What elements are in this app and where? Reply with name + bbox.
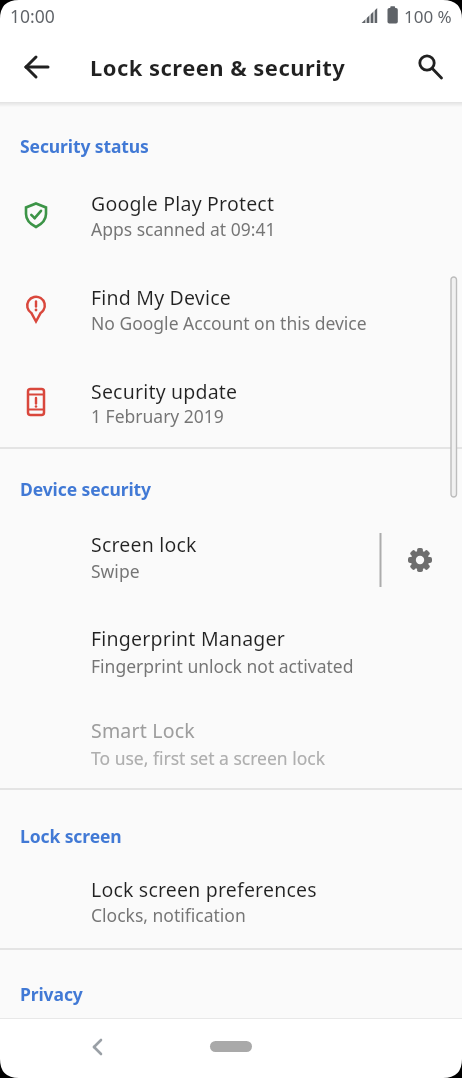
- staticText: Privacy: [20, 982, 83, 1006]
- staticText: Swipe: [91, 559, 140, 583]
- button[interactable]: [396, 536, 444, 584]
- staticText: To use, first set a screen lock: [91, 746, 326, 770]
- button[interactable]: [14, 44, 60, 90]
- staticText: Device security: [20, 477, 151, 501]
- button[interactable]: Find My Device: [0, 262, 462, 356]
- staticText: Smart Lock: [91, 717, 195, 744]
- button[interactable]: Smart Lock: [0, 695, 462, 789]
- staticText: No Google Account on this device: [91, 311, 367, 335]
- button[interactable]: Fingerprint Manager: [0, 603, 462, 697]
- button[interactable]: Lock screen preferences: [0, 854, 462, 948]
- staticText: Apps scanned at 09:41: [91, 217, 276, 241]
- button[interactable]: [406, 44, 452, 90]
- staticText: Google Play Protect: [91, 190, 275, 217]
- staticText: Find My Device: [91, 284, 231, 311]
- button[interactable]: Screen lock: [0, 508, 462, 602]
- staticText: Fingerprint Manager: [91, 625, 285, 652]
- button[interactable]: Security update: [0, 356, 462, 450]
- staticText: Lock screen & security: [90, 52, 346, 82]
- staticText: Security status: [20, 134, 149, 158]
- staticText: 100 %: [404, 5, 452, 28]
- staticText: Lock screen: [20, 824, 122, 848]
- staticText: Security update: [91, 378, 238, 405]
- staticText: Fingerprint unlock not activated: [91, 654, 354, 678]
- button[interactable]: [210, 1041, 252, 1052]
- button[interactable]: Google Play Protect: [0, 168, 462, 262]
- staticText: 1 February 2019: [91, 404, 224, 428]
- staticText: 10:00: [10, 4, 55, 28]
- staticText: Lock screen preferences: [91, 876, 317, 903]
- staticText: Clocks, notification: [91, 903, 246, 927]
- button[interactable]: [75, 1025, 119, 1069]
- staticText: Screen lock: [91, 531, 197, 558]
